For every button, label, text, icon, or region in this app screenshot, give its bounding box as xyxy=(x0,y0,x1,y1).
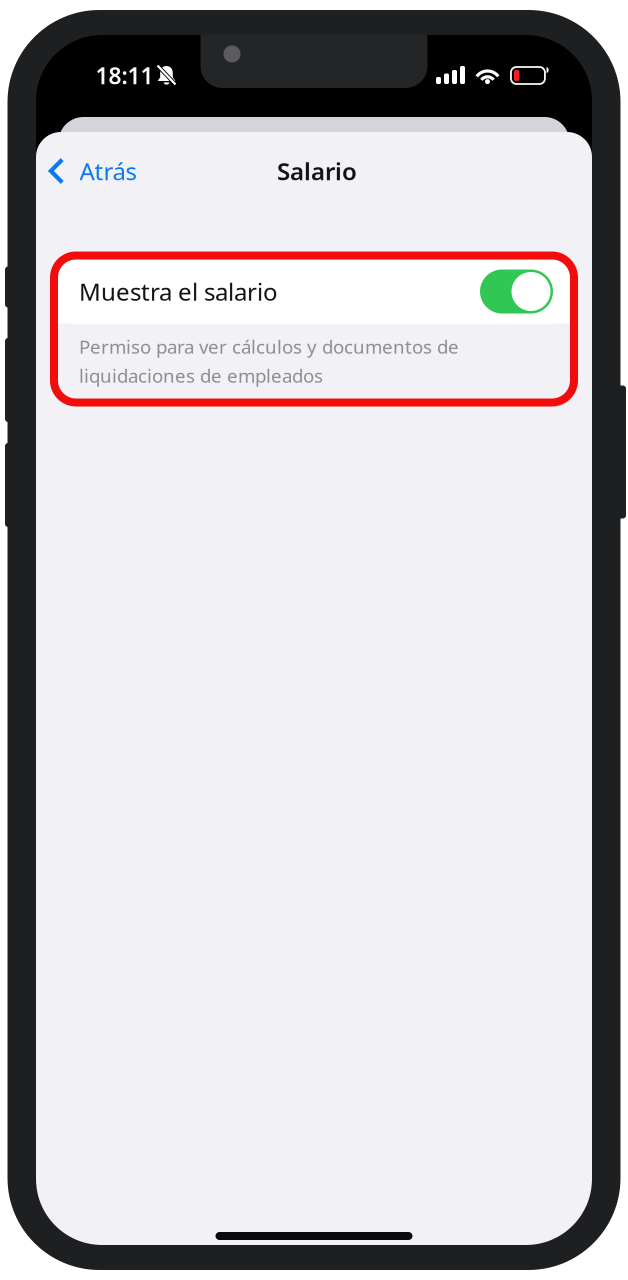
staticText: 18:11 xyxy=(95,60,153,90)
staticText: liquidaciones de empleados xyxy=(79,363,323,388)
button[interactable]: Muestra el salario xyxy=(58,259,570,323)
staticText: Muestra el salario xyxy=(79,276,278,307)
button[interactable]: Atrás xyxy=(37,142,152,200)
staticText: Salario xyxy=(277,155,357,187)
staticText: Permiso para ver cálculos y documentos d… xyxy=(79,334,459,359)
staticText: Atrás xyxy=(79,155,136,187)
